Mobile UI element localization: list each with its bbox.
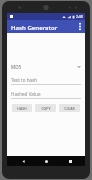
staticText: MD5 xyxy=(11,64,22,70)
button[interactable]: COPY xyxy=(35,104,56,112)
button[interactable]: HASH xyxy=(12,104,32,112)
button[interactable]: Recent apps xyxy=(62,156,78,166)
button[interactable]: Back xyxy=(15,156,31,166)
button[interactable]: Text to hash xyxy=(11,76,81,85)
staticText: Text to hash xyxy=(11,77,38,83)
staticText: CLEAR xyxy=(64,106,75,111)
button[interactable]: Hashed Value xyxy=(11,90,81,99)
staticText: 2:48 xyxy=(76,14,83,19)
staticText: Hashed Value xyxy=(11,91,41,97)
staticText: Hash Generator xyxy=(11,23,58,31)
staticText: COPY xyxy=(41,106,51,111)
button[interactable]: MD5 xyxy=(11,63,81,71)
button[interactable]: More options xyxy=(75,20,85,33)
button[interactable]: Home xyxy=(38,156,54,166)
staticText: HASH xyxy=(17,106,27,111)
button[interactable]: CLEAR xyxy=(59,104,80,112)
